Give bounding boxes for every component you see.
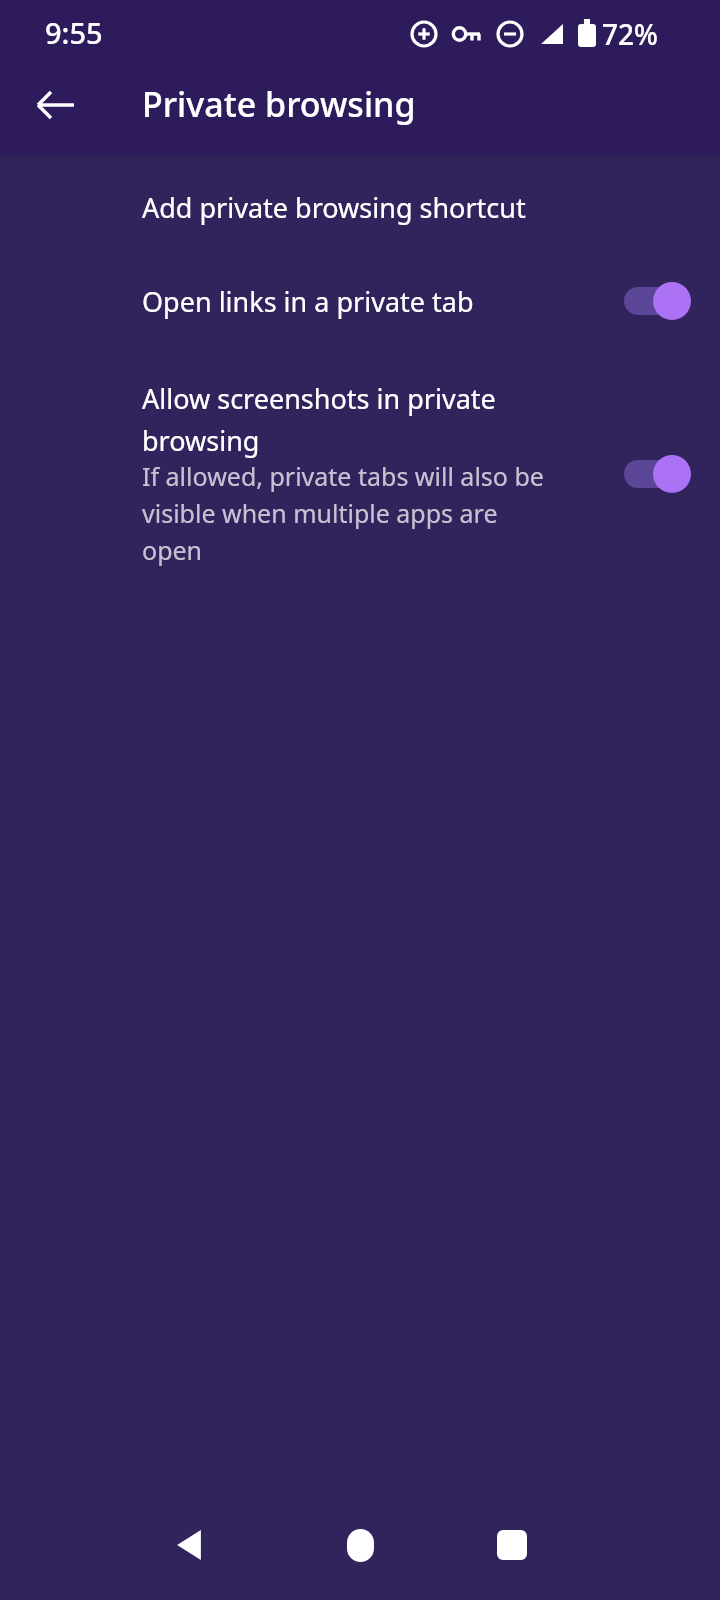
button[interactable]: Home [320,1505,400,1585]
staticText: If allowed, private tabs will also be vi… [142,459,552,567]
button[interactable]: Toggle [620,278,692,324]
staticText: 9:55 [45,13,103,52]
button[interactable]: Recent apps [472,1505,552,1585]
staticText: Private browsing [142,81,416,127]
staticText: Open links in a private tab [142,283,542,320]
button[interactable]: Add private browsing shortcut [0,189,720,226]
staticText: Add private browsing shortcut [142,189,612,226]
button[interactable]: Open links in a private tab [0,278,720,324]
staticText: Allow screenshots in private browsing [142,380,542,459]
staticText: 72% [602,15,658,53]
button[interactable]: Back [150,1505,230,1585]
button[interactable]: Allow screenshots in private browsing [0,380,720,567]
button[interactable]: Back [16,65,96,145]
button[interactable]: Toggle [620,451,692,497]
